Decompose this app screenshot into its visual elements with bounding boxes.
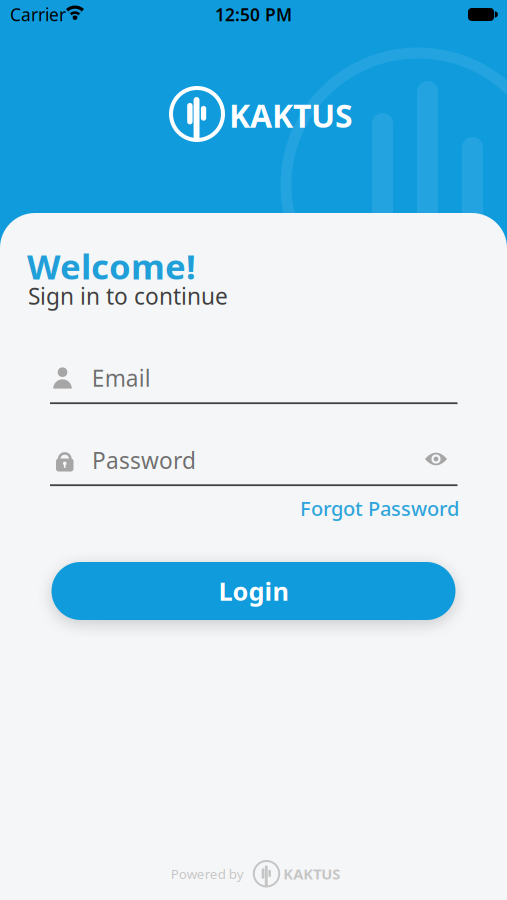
button[interactable]: Show password [420, 448, 451, 470]
button[interactable]: Password [50, 449, 418, 471]
staticText: Email [92, 363, 151, 393]
staticText: Powered by [171, 865, 244, 883]
staticText: Carrier [10, 3, 66, 26]
staticText: KAKTUS [283, 864, 340, 883]
staticText: Login [218, 574, 288, 608]
staticText: 12:50 PM [215, 3, 292, 26]
button[interactable]: Email [50, 367, 457, 389]
button[interactable]: Login [51, 562, 455, 620]
staticText: Sign in to continue [28, 281, 228, 311]
button[interactable]: Forgot Password [300, 495, 459, 522]
staticText: Welcome! [27, 243, 196, 289]
staticText: Forgot Password [300, 495, 459, 522]
staticText: Password [92, 445, 196, 475]
staticText: KAKTUS [229, 94, 353, 136]
